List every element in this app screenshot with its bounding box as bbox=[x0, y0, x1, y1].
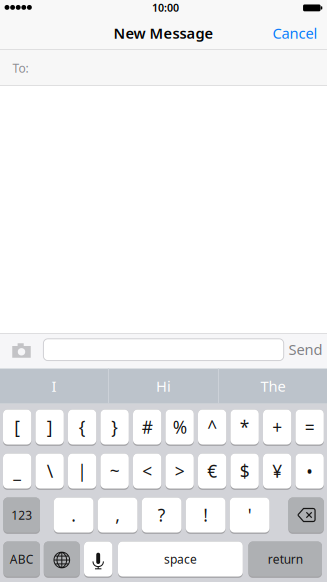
button[interactable]: | bbox=[68, 453, 96, 490]
button[interactable]: The bbox=[219, 368, 327, 403]
staticText: _ bbox=[13, 459, 21, 482]
staticText: 10:00 bbox=[152, 0, 179, 15]
staticText: ~ bbox=[110, 459, 120, 482]
staticText: The bbox=[260, 376, 285, 396]
staticText: % bbox=[173, 415, 187, 438]
staticText: \ bbox=[47, 459, 53, 482]
staticText: | bbox=[77, 459, 87, 482]
button[interactable]: \ bbox=[35, 453, 64, 490]
button[interactable]: Next keyboard bbox=[44, 541, 80, 578]
staticText: ] bbox=[47, 415, 53, 438]
button[interactable]: return bbox=[248, 541, 322, 578]
button[interactable]: 123 bbox=[3, 497, 40, 534]
staticText: ' bbox=[248, 503, 252, 526]
button[interactable]: Dictation bbox=[84, 541, 112, 578]
staticText: , bbox=[115, 503, 120, 526]
staticText: } bbox=[111, 415, 118, 438]
button[interactable]: • bbox=[295, 453, 324, 490]
staticText: > bbox=[175, 459, 185, 482]
button[interactable]: ^ bbox=[198, 409, 226, 446]
staticText: ! bbox=[203, 503, 208, 526]
button[interactable]: ' bbox=[230, 497, 269, 534]
button[interactable]: , bbox=[98, 497, 137, 534]
button[interactable]: # bbox=[133, 409, 161, 446]
staticText: # bbox=[142, 415, 153, 438]
staticText: * bbox=[240, 415, 250, 438]
button[interactable]: = bbox=[295, 409, 324, 446]
staticText: ABC bbox=[10, 551, 34, 567]
staticText: { bbox=[79, 415, 86, 438]
button[interactable]: Hi bbox=[109, 368, 217, 403]
staticText: 123 bbox=[11, 507, 32, 523]
button[interactable]: < bbox=[133, 453, 161, 490]
staticText: Send bbox=[288, 340, 322, 359]
staticText: Cancel bbox=[272, 23, 317, 43]
button[interactable]: > bbox=[165, 453, 194, 490]
button[interactable]: Send bbox=[284, 335, 326, 363]
button[interactable]: ABC bbox=[3, 541, 40, 578]
staticText: $ bbox=[240, 459, 250, 482]
button[interactable]: . bbox=[54, 497, 93, 534]
button[interactable]: Camera bbox=[6, 337, 36, 363]
staticText: • bbox=[306, 459, 313, 482]
staticText: = bbox=[305, 415, 315, 438]
button[interactable]: + bbox=[263, 409, 291, 446]
button[interactable]: ~ bbox=[100, 453, 129, 490]
button[interactable]: ! bbox=[186, 497, 225, 534]
staticText: space bbox=[164, 551, 197, 567]
staticText: ¥ bbox=[272, 459, 282, 482]
staticText: [ bbox=[14, 415, 20, 438]
button[interactable]: ¥ bbox=[263, 453, 291, 490]
button[interactable]: [ bbox=[3, 409, 31, 446]
staticText: + bbox=[272, 415, 282, 438]
button[interactable]: { bbox=[68, 409, 96, 446]
staticText: < bbox=[142, 459, 152, 482]
button[interactable]: * bbox=[230, 409, 259, 446]
button[interactable]: € bbox=[198, 453, 226, 490]
button[interactable]: $ bbox=[230, 453, 259, 490]
staticText: return bbox=[268, 551, 303, 567]
staticText: ^ bbox=[207, 415, 217, 438]
button[interactable]: _ bbox=[3, 453, 31, 490]
staticText: I bbox=[51, 376, 56, 396]
button[interactable]: I bbox=[0, 368, 108, 403]
staticText: New Message bbox=[113, 23, 213, 43]
staticText: € bbox=[207, 459, 217, 482]
button[interactable]: space bbox=[118, 541, 243, 578]
button[interactable]: % bbox=[165, 409, 194, 446]
button[interactable]: Cancel bbox=[267, 18, 323, 48]
button[interactable]: Delete bbox=[288, 497, 324, 534]
staticText: . bbox=[71, 503, 76, 526]
button[interactable]: ? bbox=[142, 497, 181, 534]
staticText: ? bbox=[158, 503, 166, 526]
button[interactable]: } bbox=[100, 409, 129, 446]
staticText: To: bbox=[12, 60, 28, 76]
button[interactable]: ] bbox=[35, 409, 64, 446]
staticText: Hi bbox=[156, 376, 171, 396]
